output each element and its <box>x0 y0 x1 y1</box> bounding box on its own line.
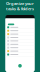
button[interactable] <box>5 39 34 43</box>
button[interactable] <box>5 49 34 53</box>
button[interactable] <box>5 43 34 46</box>
button[interactable] <box>5 53 34 56</box>
staticText: tasks & folders <box>6 6 34 11</box>
staticText: Organize your <box>6 1 34 6</box>
button[interactable] <box>5 29 34 32</box>
button[interactable] <box>5 46 34 49</box>
button[interactable] <box>5 26 34 29</box>
button[interactable] <box>5 32 34 36</box>
button[interactable] <box>5 36 34 39</box>
